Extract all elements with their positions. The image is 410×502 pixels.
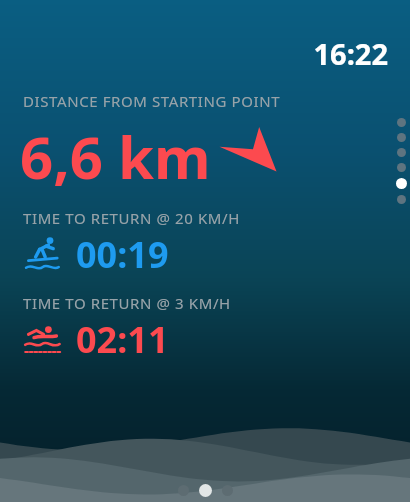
button[interactable]: TIME TO RETURN @ 20 KM/H: [0, 208, 410, 279]
staticText: 02:11: [76, 315, 169, 364]
button[interactable]: 6,6 km: [0, 117, 410, 196]
other: Surfing speed: [22, 235, 62, 275]
other: Direction to starting point: [217, 122, 279, 184]
staticText: 16:22: [313, 34, 388, 73]
button[interactable]: TIME TO RETURN @ 3 KM/H: [0, 293, 410, 364]
staticText: TIME TO RETURN @ 3 KM/H: [23, 293, 231, 313]
staticText: DISTANCE FROM STARTING POINT: [23, 91, 281, 111]
staticText: 6,6 km: [20, 117, 211, 196]
other: Swimming speed: [22, 320, 62, 360]
staticText: 00:19: [76, 230, 169, 279]
staticText: TIME TO RETURN @ 20 KM/H: [23, 208, 240, 228]
